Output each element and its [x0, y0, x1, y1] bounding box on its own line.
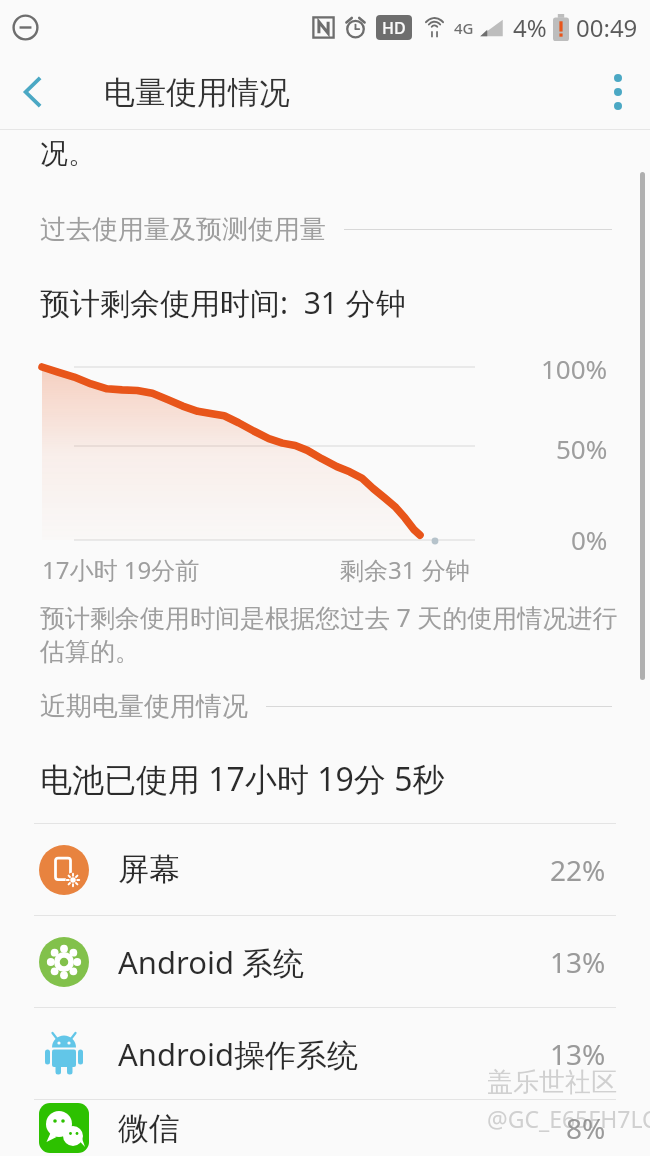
staticText: 00:49 — [576, 11, 638, 44]
staticText: 4G — [454, 18, 474, 38]
staticText: 电量使用情况 — [104, 73, 290, 112]
staticText: HD — [382, 17, 406, 39]
staticText: 剩余31 分钟 — [340, 553, 470, 586]
staticText: 50% — [556, 431, 608, 466]
button[interactable]: More options — [586, 60, 650, 124]
button[interactable]: 屏幕 — [0, 824, 650, 915]
staticText: 22% — [550, 851, 606, 889]
staticText: 过去使用量及预测使用量 — [40, 213, 326, 246]
staticText: 100% — [541, 351, 608, 386]
staticText: 近期电量使用情况 — [40, 690, 248, 723]
staticText: 17小时 19分前 — [42, 553, 200, 586]
staticText: 况。 — [40, 136, 96, 171]
staticText: 13% — [550, 1035, 606, 1073]
button[interactable]: Android操作系统 — [0, 1008, 650, 1099]
staticText: Android 系统 — [118, 941, 305, 983]
button[interactable]: Back — [0, 59, 66, 125]
staticText: 预计剩余使用时间是根据您过去 7 天的使用情况进行 估算的。 — [40, 600, 618, 668]
button[interactable]: 微信 — [0, 1100, 650, 1156]
staticText: 8% — [566, 1109, 606, 1147]
button[interactable]: Android 系统 — [0, 916, 650, 1007]
staticText: 4% — [513, 11, 547, 44]
staticText: 微信 — [118, 1109, 180, 1148]
staticText: 0% — [571, 522, 608, 557]
staticText: Android操作系统 — [118, 1033, 359, 1075]
staticText: 屏幕 — [118, 850, 180, 889]
staticText: 13% — [550, 943, 606, 981]
staticText: 预计剩余使用时间: 31 分钟 — [40, 282, 406, 323]
staticText: 盖乐世社区 — [487, 1066, 617, 1099]
staticText: 电池已使用 17小时 19分 5秒 — [40, 757, 445, 801]
staticText: @GC_E65FH7LC — [487, 1103, 650, 1134]
